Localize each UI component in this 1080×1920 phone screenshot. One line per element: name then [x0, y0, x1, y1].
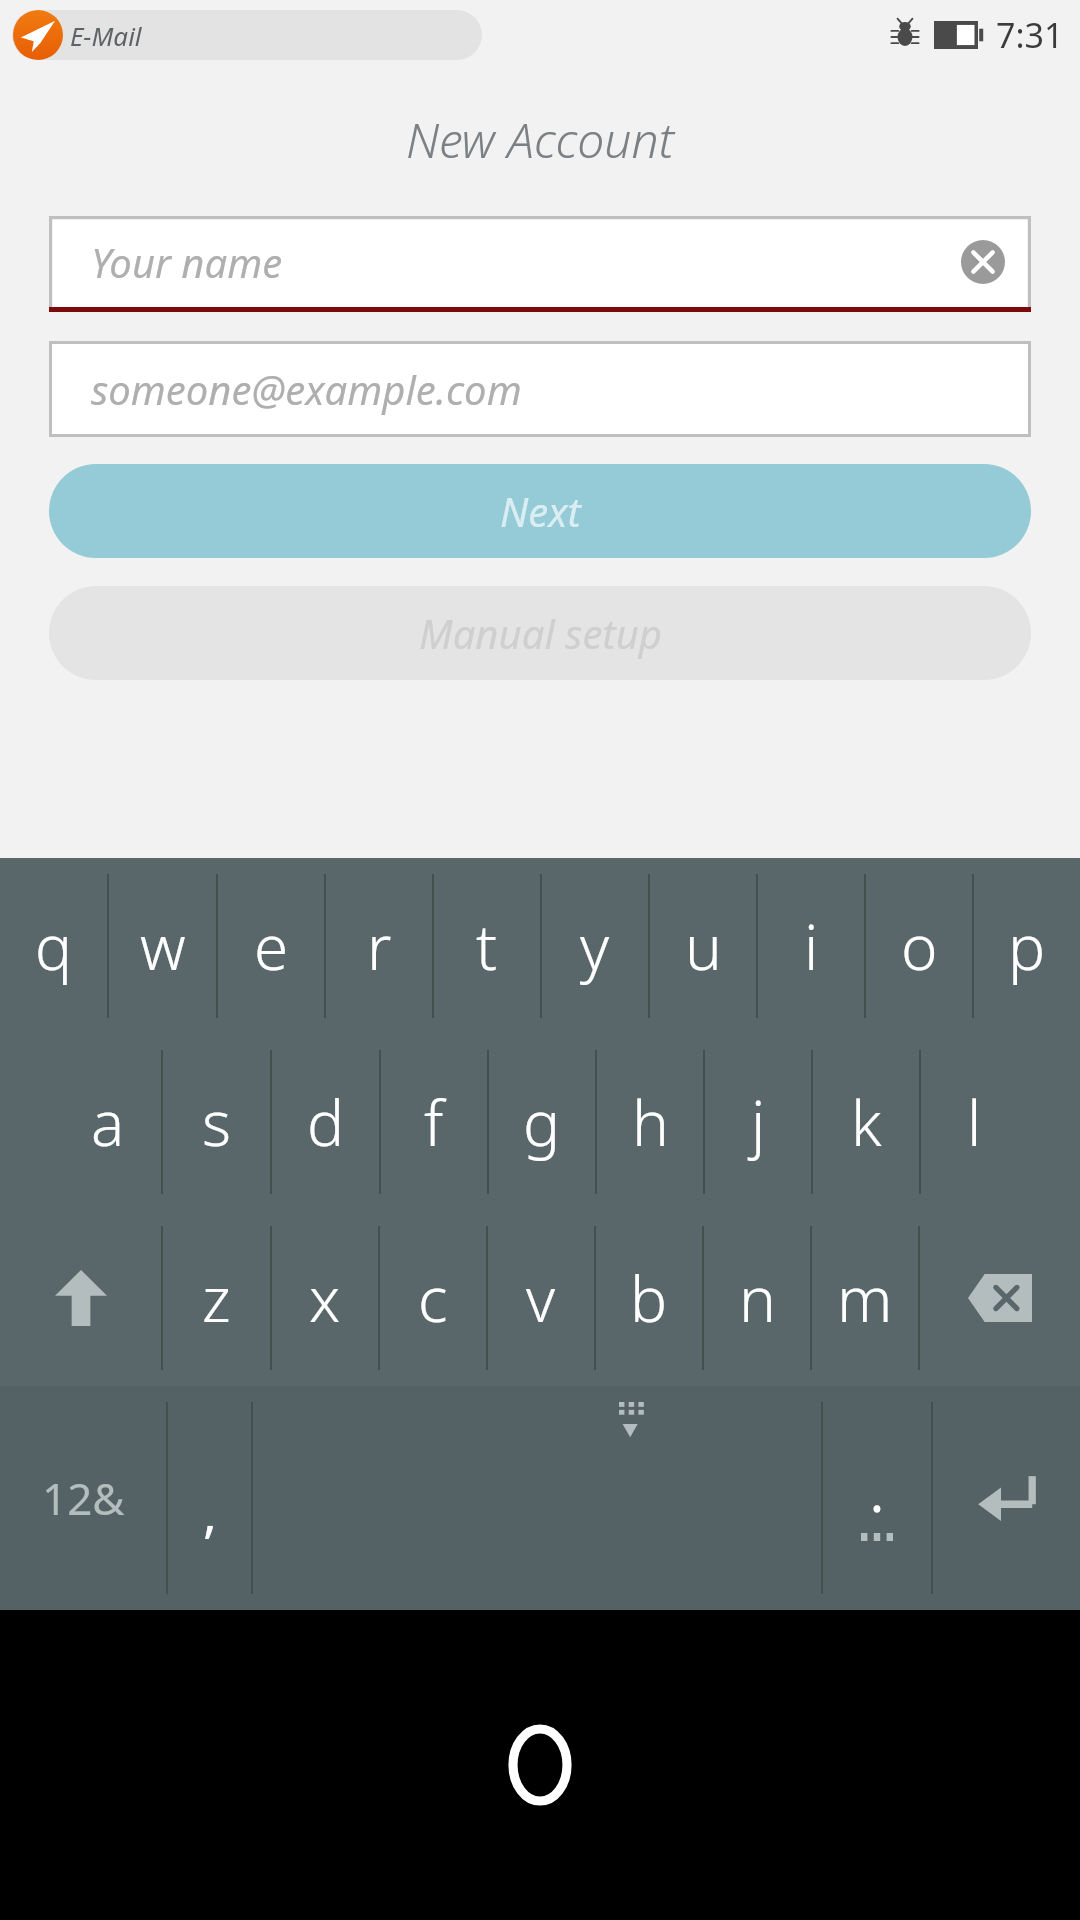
staticText: New Account	[0, 107, 1080, 172]
button[interactable]: q	[0, 858, 107, 1034]
staticText: 12&	[42, 1468, 125, 1528]
button[interactable]: c	[380, 1210, 486, 1386]
staticText: w	[140, 904, 186, 988]
button[interactable]: t	[434, 858, 540, 1034]
button[interactable]: Backspace	[920, 1210, 1080, 1386]
button[interactable]: Space	[253, 1386, 821, 1610]
button[interactable]: w	[109, 858, 216, 1034]
button[interactable]: f	[381, 1034, 487, 1210]
staticText: k	[851, 1080, 882, 1164]
staticText: f	[424, 1080, 444, 1164]
button[interactable]: Enter	[933, 1386, 1080, 1610]
button[interactable]: l	[921, 1034, 1027, 1210]
button[interactable]: z	[163, 1210, 270, 1386]
staticText: b	[630, 1256, 668, 1340]
button[interactable]: g	[489, 1034, 595, 1210]
button[interactable]: Home	[496, 1721, 584, 1809]
button[interactable]: r	[326, 858, 432, 1034]
button[interactable]: h	[597, 1034, 703, 1210]
staticText: l	[967, 1080, 982, 1164]
staticText: E-Mail	[70, 18, 142, 53]
staticText: n	[739, 1256, 776, 1340]
staticText: 7:31	[996, 12, 1064, 58]
staticText: Manual setup	[419, 606, 662, 660]
button[interactable]: x	[272, 1210, 378, 1386]
button[interactable]: .	[823, 1386, 931, 1610]
staticText: q	[35, 904, 73, 988]
button[interactable]: ,	[168, 1386, 251, 1610]
staticText: Next	[500, 484, 581, 538]
staticText: i	[804, 904, 819, 988]
staticText: r	[367, 904, 392, 988]
staticText: h	[632, 1080, 669, 1164]
staticText: m	[837, 1256, 893, 1340]
button[interactable]: j	[705, 1034, 811, 1210]
button[interactable]: v	[488, 1210, 594, 1386]
staticText: e	[254, 904, 289, 988]
button[interactable]: d	[272, 1034, 379, 1210]
staticText: j	[751, 1080, 766, 1164]
button[interactable]: u	[650, 858, 756, 1034]
staticText: .	[870, 1456, 884, 1527]
button[interactable]: y	[542, 858, 648, 1034]
button[interactable]: e	[218, 858, 324, 1034]
staticText: ,	[203, 1476, 217, 1547]
button[interactable]: n	[704, 1210, 810, 1386]
button[interactable]: p	[974, 858, 1080, 1034]
staticText: Your name	[91, 235, 283, 289]
button[interactable]: m	[812, 1210, 918, 1386]
button[interactable]: Clear name	[959, 238, 1007, 286]
staticText: g	[523, 1080, 561, 1164]
staticText: z	[202, 1256, 231, 1340]
staticText: t	[476, 904, 498, 988]
button[interactable]: Next	[49, 464, 1031, 558]
button[interactable]: s	[163, 1034, 270, 1210]
button[interactable]: o	[866, 858, 972, 1034]
staticText: u	[685, 904, 722, 988]
button[interactable]: i	[758, 858, 864, 1034]
button[interactable]: someone@example.com	[49, 341, 1031, 437]
button[interactable]: Your name	[49, 216, 1031, 307]
staticText: o	[901, 904, 938, 988]
staticText: d	[307, 1080, 345, 1164]
staticText: p	[1008, 904, 1046, 988]
staticText: s	[202, 1080, 232, 1164]
button[interactable]: k	[813, 1034, 919, 1210]
staticText: c	[418, 1256, 448, 1340]
button[interactable]: Manual setup	[49, 586, 1031, 680]
button[interactable]: a	[54, 1034, 161, 1210]
button[interactable]: Shift	[0, 1210, 161, 1386]
button[interactable]: b	[596, 1210, 702, 1386]
button[interactable]: 12&	[0, 1386, 166, 1610]
staticText: someone@example.com	[91, 362, 522, 416]
staticText: a	[91, 1080, 125, 1164]
staticText: x	[309, 1256, 341, 1340]
staticText: y	[580, 904, 610, 988]
staticText: v	[526, 1256, 556, 1340]
